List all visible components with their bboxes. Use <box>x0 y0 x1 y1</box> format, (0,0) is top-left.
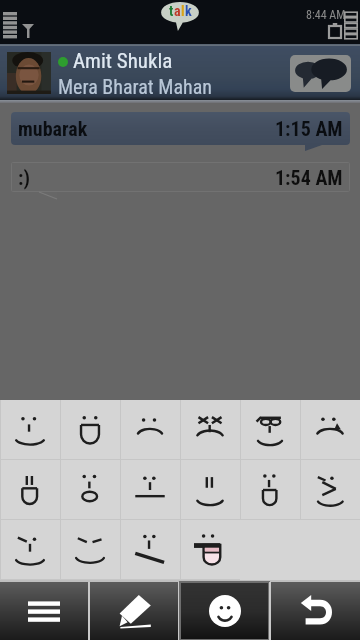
staticText: 8:44 AM <box>306 8 346 22</box>
button[interactable]: Emoticon 15 <box>120 520 180 580</box>
button[interactable]: mubarak <box>11 112 350 145</box>
button[interactable]: Emoticon 6 <box>300 400 360 460</box>
button[interactable]: Emoticons <box>180 582 269 640</box>
button[interactable]: Amit Shukla <box>0 46 360 100</box>
button[interactable]: Emoticon 13 <box>0 520 60 580</box>
staticText: Amit Shukla <box>73 49 173 74</box>
button[interactable]: Emoticon 10 <box>180 460 240 520</box>
button[interactable]: :) <box>11 162 350 192</box>
button[interactable]: Menu <box>0 582 88 640</box>
staticText: Mera Bharat Mahan <box>58 75 212 98</box>
button[interactable]: Emoticon 12 <box>300 460 360 520</box>
staticText: l <box>181 3 185 19</box>
button[interactable]: Back <box>271 582 360 640</box>
button[interactable]: Emoticon 4 <box>180 400 240 460</box>
button[interactable]: Emoticon 8 <box>60 460 120 520</box>
button[interactable]: Emoticon 11 <box>240 460 300 520</box>
staticText: :) <box>18 166 30 189</box>
button[interactable]: Switch chats <box>290 55 351 92</box>
button[interactable]: Emoticon 2 <box>60 400 120 460</box>
staticText: mubarak <box>18 117 88 140</box>
button[interactable]: Emoticon 7 <box>0 460 60 520</box>
button[interactable]: Emoticon 1 <box>0 400 60 460</box>
staticText: k <box>185 3 192 19</box>
button[interactable]: Emoticon 14 <box>60 520 120 580</box>
button[interactable]: Emoticon 3 <box>120 400 180 460</box>
staticText: t <box>169 3 174 19</box>
button[interactable]: Emoticon 9 <box>120 460 180 520</box>
staticText: 1:15 AM <box>275 117 343 140</box>
button[interactable]: Emoticon 5 <box>240 400 300 460</box>
staticText: a <box>174 3 181 19</box>
button[interactable]: Compose message <box>90 582 178 640</box>
staticText: 1:54 AM <box>275 166 343 189</box>
button[interactable]: Emoticon 16 <box>180 520 240 580</box>
